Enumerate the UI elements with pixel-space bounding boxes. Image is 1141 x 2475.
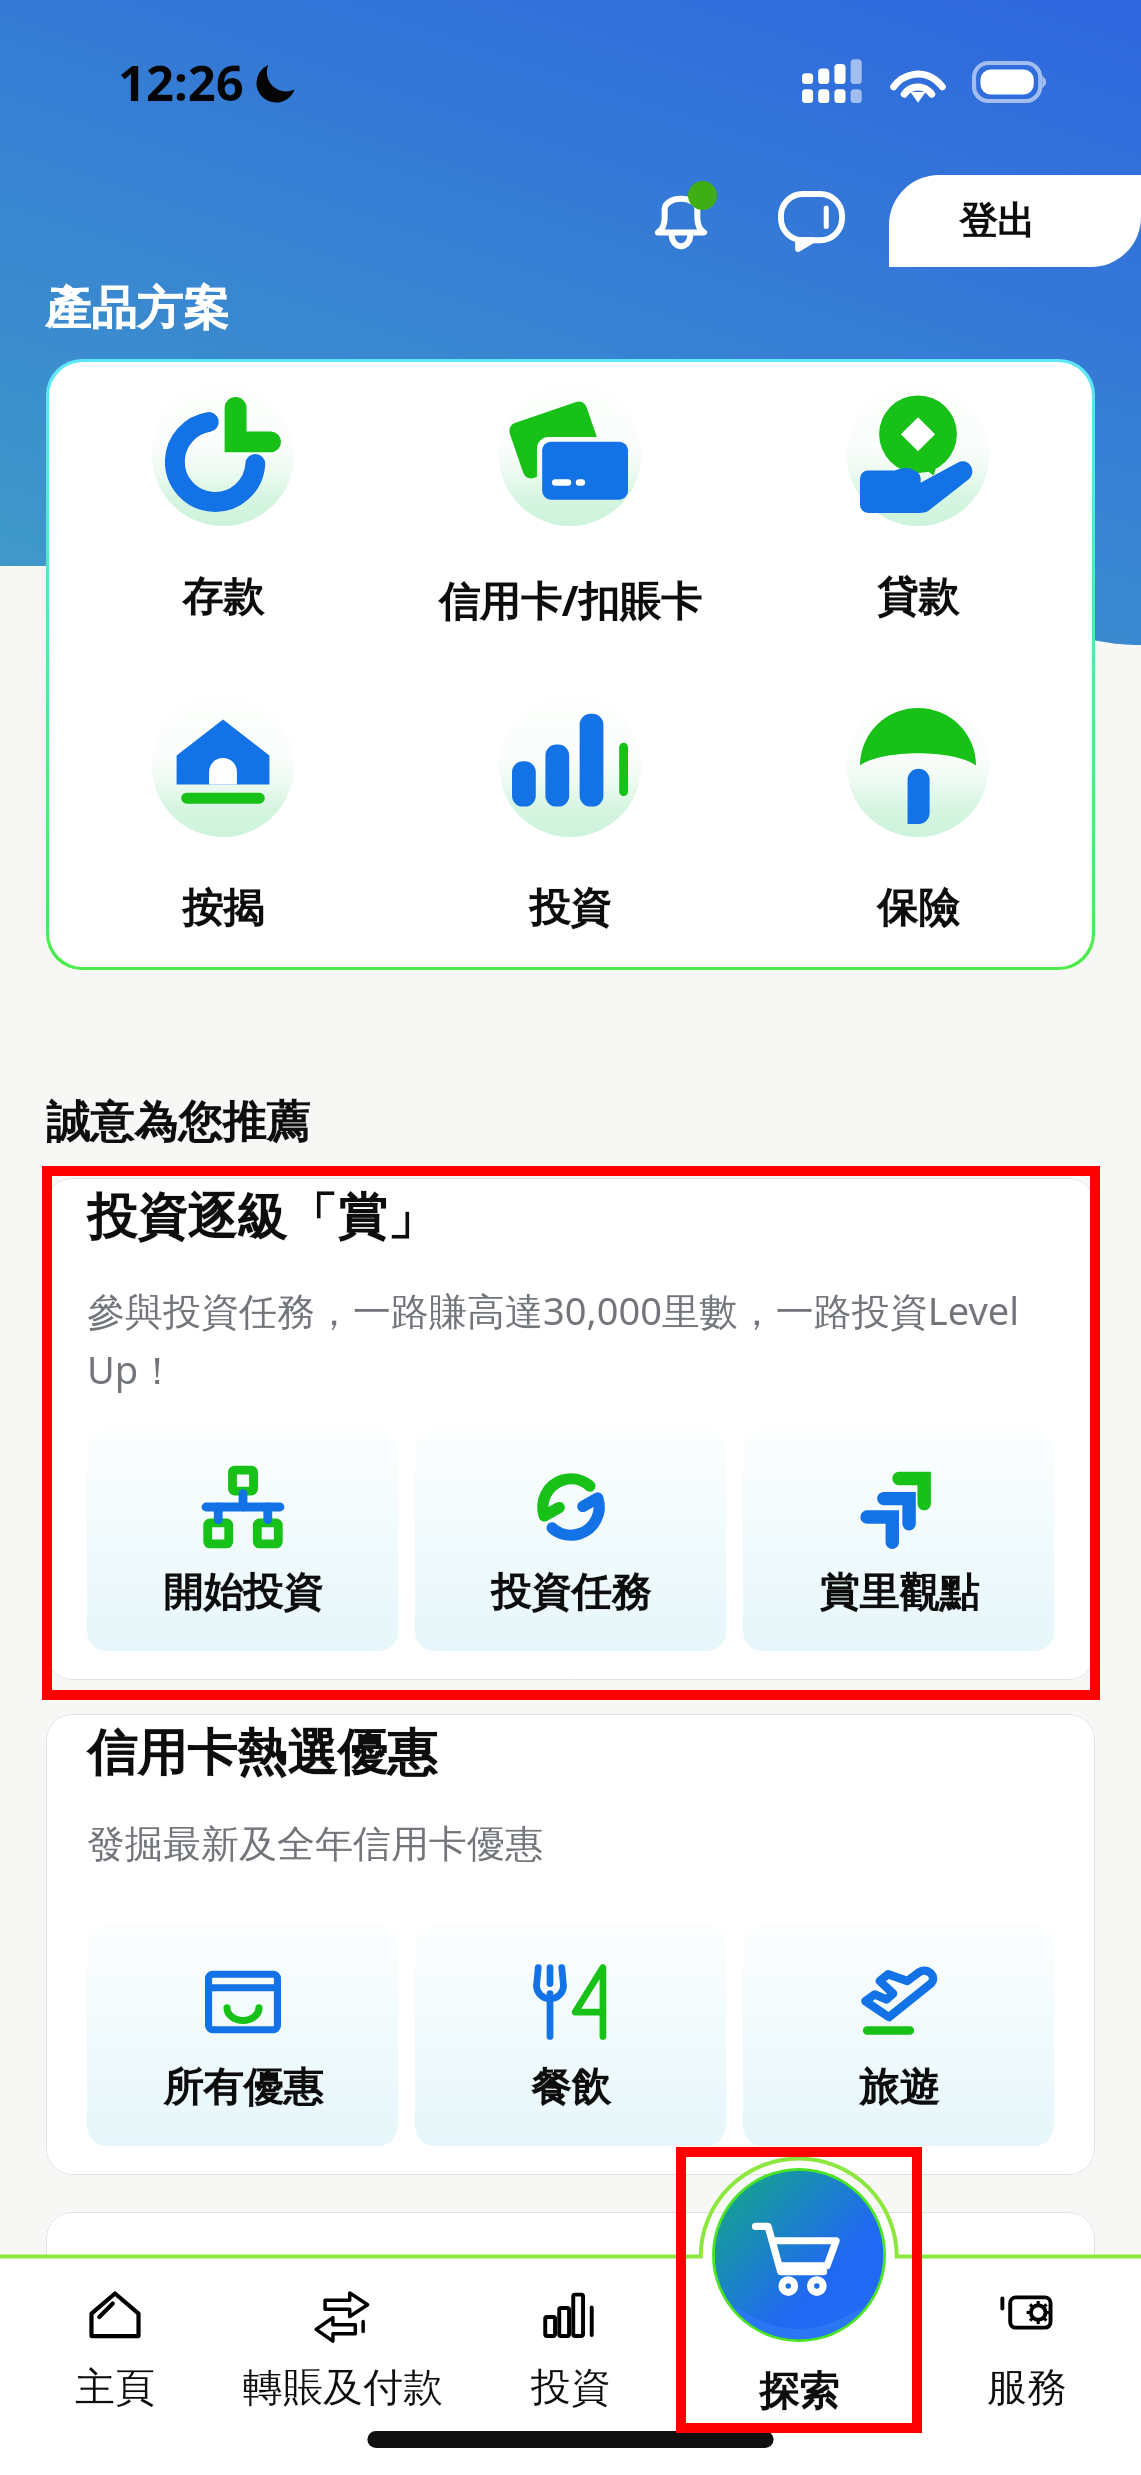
- staticText: 誠意為您推薦: [46, 1095, 310, 1150]
- button[interactable]: 投資任務: [415, 1430, 726, 1651]
- staticText: 參與投資任務，一路賺高達30,000里數，一路投資Level Up！: [87, 1284, 1054, 1395]
- staticText: 主頁: [75, 2362, 155, 2412]
- staticText: 12:26: [118, 49, 244, 116]
- button[interactable]: 按揭: [49, 695, 396, 935]
- staticText: 信用卡/扣賬卡: [438, 572, 702, 628]
- staticText: 投資任務: [491, 1567, 651, 1617]
- staticText: 餐飲: [531, 2062, 611, 2112]
- button[interactable]: 投資: [396, 695, 744, 935]
- button[interactable]: 開始投資: [87, 1430, 398, 1651]
- button[interactable]: Notifications: [625, 165, 737, 277]
- staticText: 存款: [182, 572, 264, 624]
- staticText: 發掘最新及全年信用卡優惠: [87, 1820, 543, 1868]
- button[interactable]: 保險: [744, 695, 1092, 935]
- staticText: 信用卡熱選優惠: [87, 1722, 437, 1785]
- button[interactable]: 賞里觀點: [743, 1430, 1054, 1651]
- staticText: 旅遊: [859, 2062, 939, 2112]
- button[interactable]: 服務: [913, 2255, 1141, 2435]
- staticText: 產品方案: [45, 280, 229, 338]
- staticText: 保險: [877, 883, 959, 935]
- staticText: 按揭: [182, 883, 264, 935]
- button[interactable]: 主頁: [0, 2255, 229, 2435]
- staticText: 開始投資: [163, 1567, 323, 1617]
- button[interactable]: 貸款: [744, 384, 1092, 624]
- button[interactable]: 餐飲: [415, 1925, 726, 2146]
- button[interactable]: 轉賬及付款: [229, 2255, 457, 2435]
- button[interactable]: Chat: [755, 165, 867, 277]
- button[interactable]: 投資: [457, 2255, 685, 2435]
- button[interactable]: 旅遊: [743, 1925, 1054, 2146]
- button[interactable]: 所有優惠: [87, 1925, 398, 2146]
- staticText: 所有優惠: [163, 2062, 323, 2112]
- staticText: 探索: [759, 2366, 839, 2416]
- staticText: 登出: [959, 197, 1035, 245]
- staticText: 投資: [531, 2362, 611, 2412]
- button[interactable]: 登出: [889, 175, 1141, 267]
- staticText: 轉賬及付款: [243, 2362, 443, 2412]
- staticText: 投資逐級「賞」: [87, 1186, 437, 1249]
- staticText: 服務: [987, 2362, 1067, 2412]
- staticText: 賞里觀點: [819, 1567, 979, 1617]
- button[interactable]: 存款: [49, 384, 396, 624]
- staticText: 投資: [529, 883, 611, 935]
- staticText: 貸款: [877, 572, 959, 624]
- button[interactable]: 探索 Explore: [685, 2255, 913, 2435]
- button[interactable]: 信用卡/扣賬卡: [396, 384, 744, 628]
